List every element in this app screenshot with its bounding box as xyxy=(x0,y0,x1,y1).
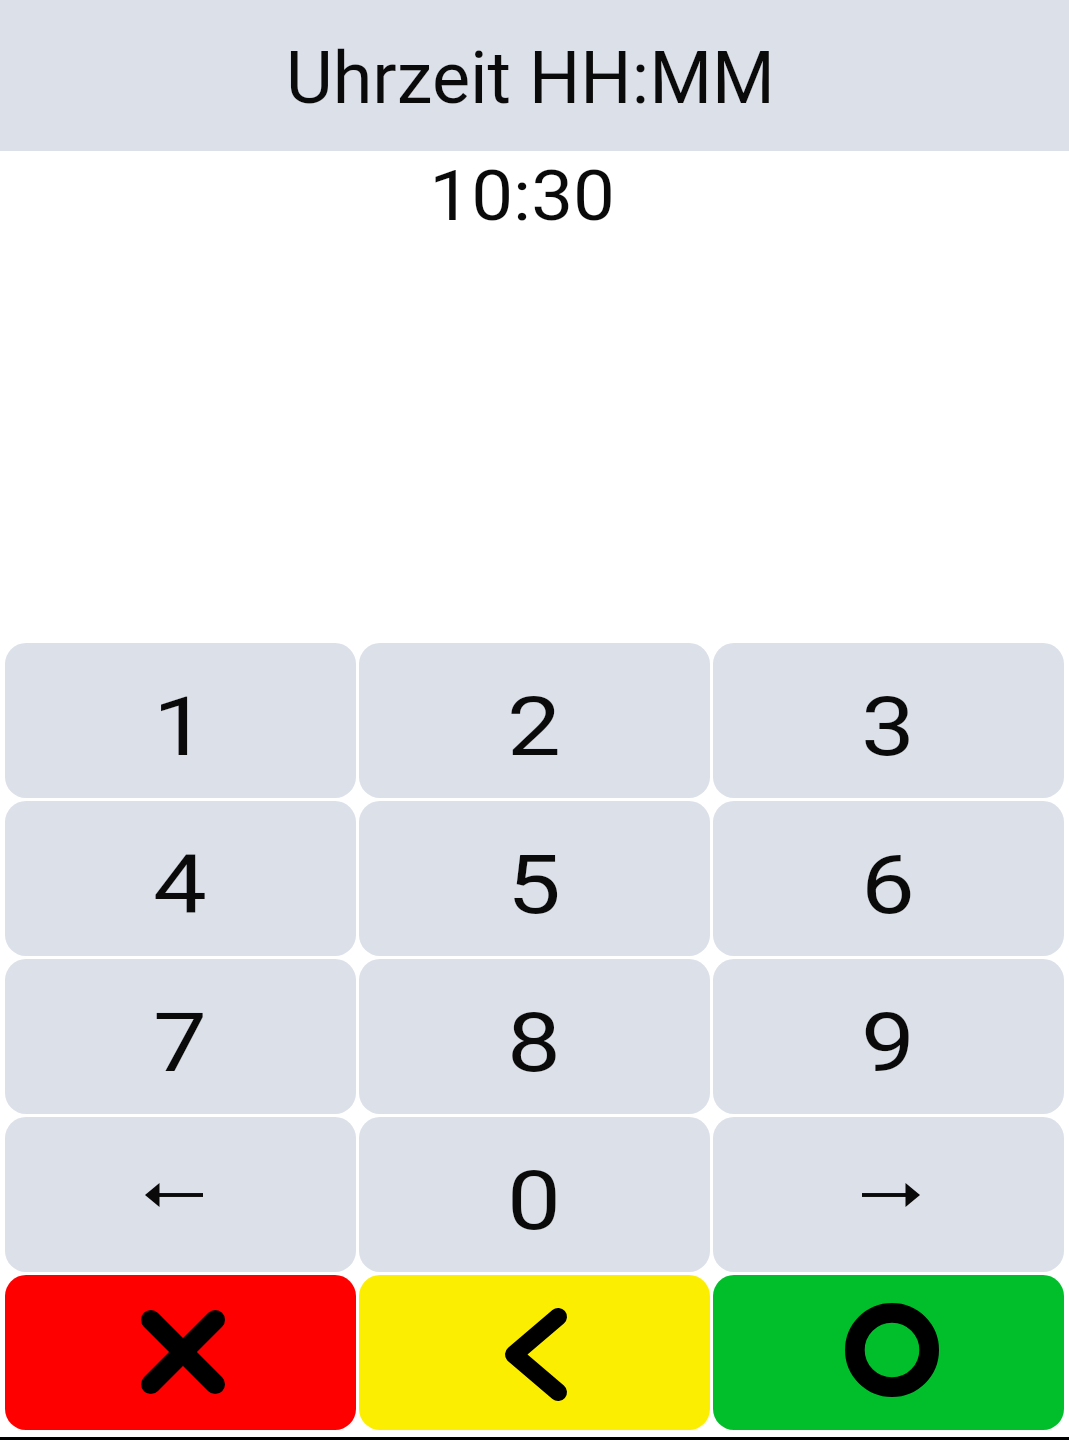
staticText: 6 xyxy=(861,837,916,933)
button[interactable]: 4 xyxy=(5,801,356,956)
staticText: 9 xyxy=(861,995,916,1091)
button[interactable]: 2 xyxy=(359,643,710,798)
staticText: 0 xyxy=(507,1153,562,1249)
button[interactable]: Move left xyxy=(5,1117,356,1272)
staticText: 7 xyxy=(153,995,208,1091)
staticText: 8 xyxy=(507,995,562,1091)
button[interactable]: 9 xyxy=(713,959,1064,1114)
button[interactable]: 3 xyxy=(713,643,1064,798)
button[interactable]: 8 xyxy=(359,959,710,1114)
button[interactable]: 7 xyxy=(5,959,356,1114)
staticText: 2 xyxy=(507,679,562,775)
button[interactable]: 6 xyxy=(713,801,1064,956)
button[interactable]: Clear xyxy=(5,1275,356,1430)
staticText: 3 xyxy=(861,679,916,775)
button[interactable]: Back xyxy=(359,1275,710,1430)
staticText: Uhrzeit HH:MM xyxy=(286,36,775,120)
button[interactable]: 0 xyxy=(359,1117,710,1272)
button[interactable]: 5 xyxy=(359,801,710,956)
button[interactable]: OK xyxy=(713,1275,1064,1430)
staticText: 4 xyxy=(153,837,208,933)
staticText: 10:30 xyxy=(429,155,616,237)
button[interactable]: 1 xyxy=(5,643,356,798)
staticText: 1 xyxy=(153,679,208,775)
button[interactable]: Move right xyxy=(713,1117,1064,1272)
staticText: 5 xyxy=(507,837,562,933)
